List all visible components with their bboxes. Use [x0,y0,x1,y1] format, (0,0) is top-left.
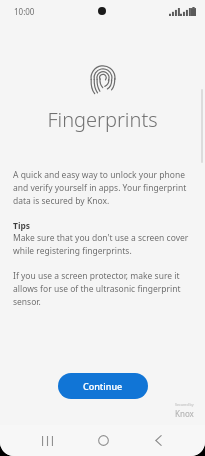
staticText: Secured by [175,402,194,407]
staticText: Knox [175,408,194,419]
button[interactable]: Continue [58,373,148,399]
staticText: Tips [13,220,31,232]
staticText: If you use a screen protector, make sure… [13,270,192,308]
button[interactable]: Back [141,425,175,456]
button[interactable]: Recent apps [30,425,64,456]
staticText: Continue [83,380,123,392]
staticText: Make sure that you don't use a screen co… [13,232,192,257]
staticText: Fingerprints [0,106,205,133]
staticText: A quick and easy way to unlock your phon… [13,169,192,207]
staticText: 10:00 [14,6,35,17]
button[interactable]: Home [86,425,120,456]
